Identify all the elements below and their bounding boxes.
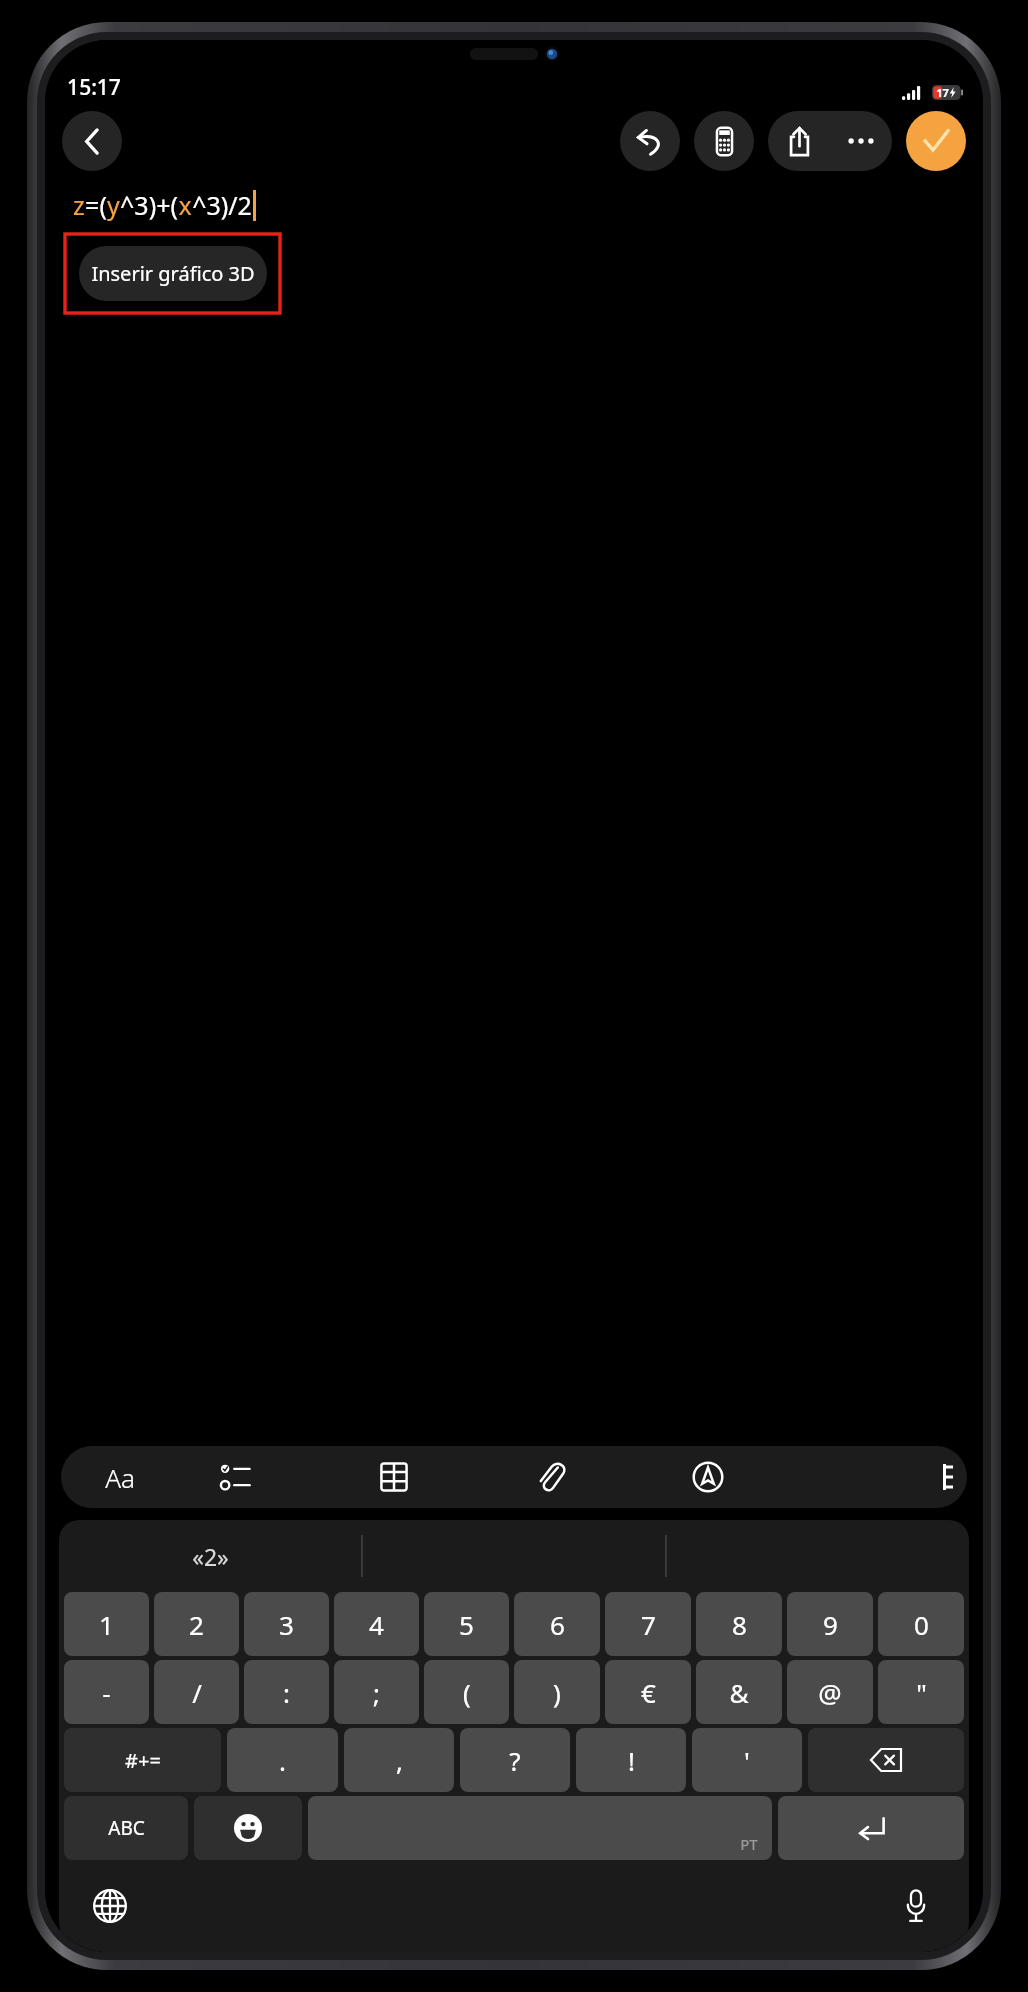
button[interactable]: «2»: [59, 1520, 361, 1592]
button[interactable]: /: [154, 1660, 239, 1724]
staticText: ': [744, 1743, 750, 1778]
button[interactable]: Table: [315, 1446, 472, 1508]
staticText: ;: [373, 1675, 380, 1710]
button[interactable]: ': [692, 1728, 802, 1792]
staticText: .: [279, 1743, 286, 1778]
button[interactable]: #+=: [64, 1728, 221, 1792]
staticText: 3: [279, 1607, 294, 1642]
button[interactable]: 2: [154, 1592, 239, 1656]
staticText: Inserir gráfico 3D: [91, 260, 255, 287]
staticText: ,: [396, 1743, 403, 1778]
staticText: ): [553, 1675, 561, 1710]
staticText: Aa: [105, 1460, 135, 1495]
button[interactable]: €: [605, 1660, 691, 1724]
staticText: (: [463, 1675, 471, 1710]
button[interactable]: ,: [344, 1728, 454, 1792]
staticText: #+=: [125, 1747, 161, 1774]
button[interactable]: 3: [244, 1592, 329, 1656]
button[interactable]: Return: [778, 1796, 964, 1860]
staticText: =(: [85, 188, 107, 222]
button[interactable]: ?: [460, 1728, 570, 1792]
button[interactable]: More options: [830, 111, 892, 171]
button[interactable]: ;: [334, 1660, 419, 1724]
button[interactable]: 5: [424, 1592, 509, 1656]
staticText: ^3)+(: [120, 188, 178, 222]
staticText: /: [192, 1675, 202, 1710]
button[interactable]: ): [514, 1660, 600, 1724]
staticText: -: [102, 1675, 111, 1710]
staticText: 2: [189, 1607, 204, 1642]
staticText: 0: [914, 1607, 929, 1642]
button[interactable]: Emoji: [194, 1796, 302, 1860]
staticText: 6: [550, 1607, 565, 1642]
button[interactable]: Attach: [472, 1446, 629, 1508]
staticText: 17: [936, 85, 949, 100]
button[interactable]: 4: [334, 1592, 419, 1656]
staticText: 4: [369, 1607, 384, 1642]
button[interactable]: -: [64, 1660, 149, 1724]
button[interactable]: @: [787, 1660, 873, 1724]
button[interactable]: Lists: [157, 1446, 315, 1508]
staticText: !: [628, 1743, 635, 1778]
staticText: ": [916, 1675, 927, 1710]
button[interactable]: Dictate: [889, 1879, 943, 1933]
button[interactable]: Change keyboard: [83, 1879, 137, 1933]
button[interactable]: 0: [878, 1592, 964, 1656]
staticText: z: [73, 188, 85, 222]
staticText: x: [178, 188, 192, 222]
button[interactable]: More: [943, 1446, 963, 1508]
button[interactable]: Calculator: [694, 111, 754, 171]
staticText: 5: [459, 1607, 474, 1642]
button[interactable]: 9: [787, 1592, 873, 1656]
staticText: 8: [732, 1607, 747, 1642]
staticText: PT: [740, 1834, 758, 1854]
button[interactable]: ABC: [64, 1796, 188, 1860]
button[interactable]: Delete: [808, 1728, 964, 1792]
button[interactable]: Markup: [629, 1446, 786, 1508]
button[interactable]: 1: [64, 1592, 149, 1656]
button[interactable]: Space: [308, 1796, 772, 1860]
button[interactable]: :: [244, 1660, 329, 1724]
staticText: :: [283, 1675, 290, 1710]
button[interactable]: Aa: [83, 1446, 157, 1508]
button[interactable]: 7: [605, 1592, 691, 1656]
staticText: €: [641, 1675, 656, 1710]
button[interactable]: 8: [696, 1592, 782, 1656]
staticText: &: [729, 1675, 749, 1710]
staticText: 9: [823, 1607, 838, 1642]
button[interactable]: .: [227, 1728, 338, 1792]
staticText: «2»: [192, 1541, 229, 1572]
staticText: @: [818, 1675, 842, 1710]
staticText: ^3)/2: [192, 188, 252, 222]
button[interactable]: Done: [906, 111, 966, 171]
staticText: 15:17: [67, 73, 121, 102]
button[interactable]: !: [576, 1728, 686, 1792]
button[interactable]: &: [696, 1660, 782, 1724]
staticText: ?: [509, 1743, 521, 1778]
staticText: y: [107, 188, 120, 222]
button[interactable]: Back: [62, 111, 122, 171]
button[interactable]: Share: [768, 111, 830, 171]
button[interactable]: (: [424, 1660, 509, 1724]
button[interactable]: 6: [514, 1592, 600, 1656]
staticText: 1: [99, 1607, 114, 1642]
staticText: 7: [641, 1607, 656, 1642]
button[interactable]: ": [878, 1660, 964, 1724]
button[interactable]: Undo: [620, 111, 680, 171]
staticText: ABC: [108, 1815, 145, 1841]
button[interactable]: Inserir gráfico 3D: [79, 246, 267, 301]
